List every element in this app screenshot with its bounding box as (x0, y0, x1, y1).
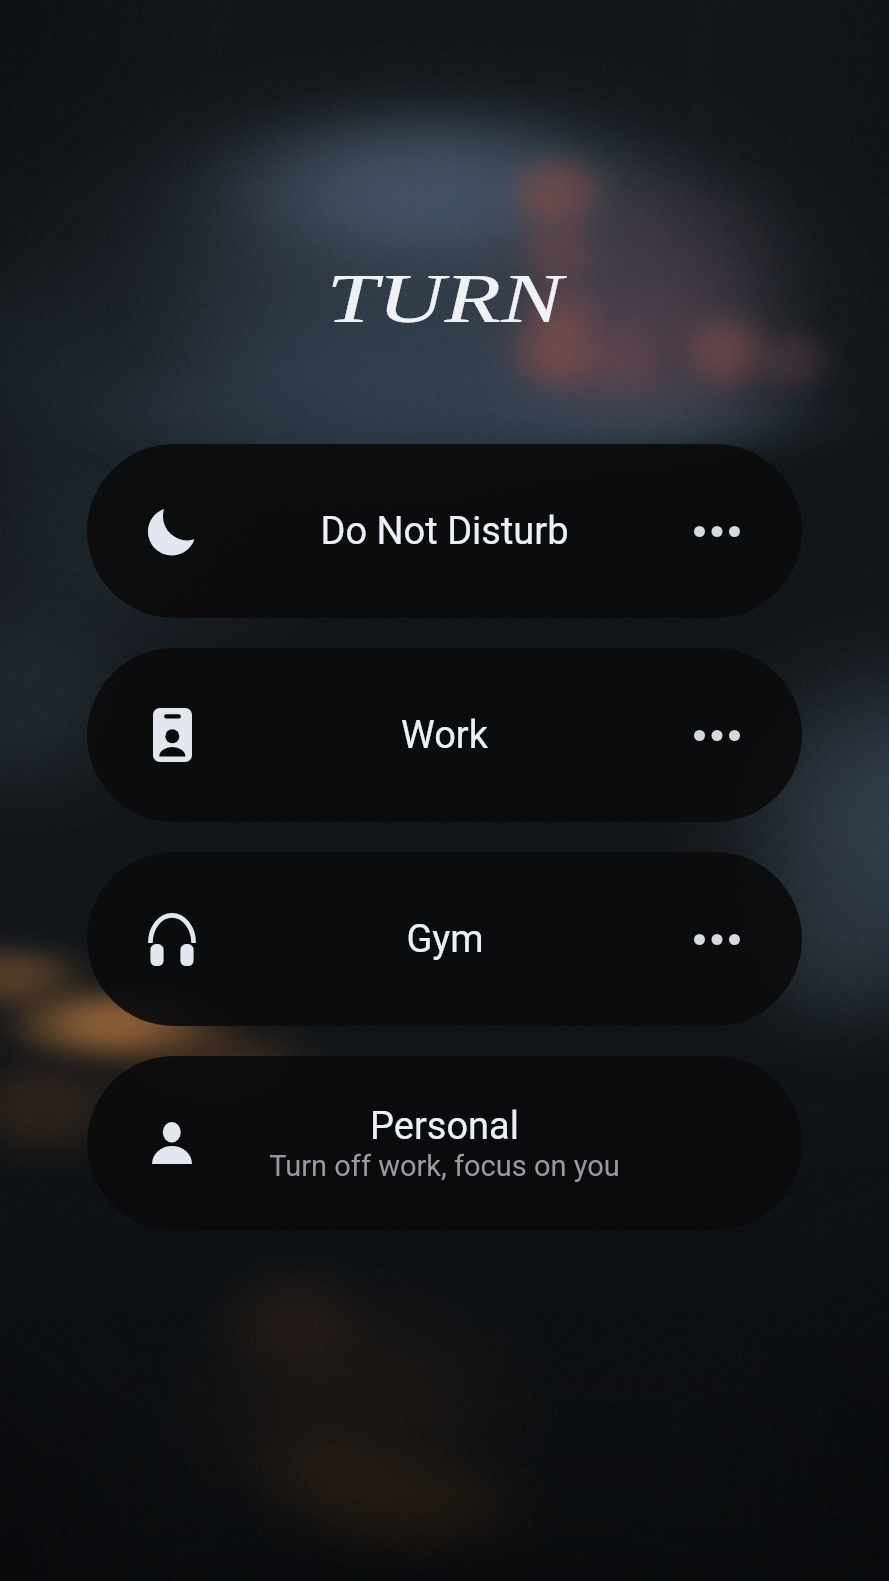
button[interactable]: Do Not Disturb (87, 444, 802, 618)
staticText: Personal (370, 1104, 519, 1149)
staticText: Work (401, 713, 488, 758)
button[interactable]: More options (678, 492, 756, 570)
button[interactable]: More options (678, 900, 756, 978)
staticText: TURN (326, 260, 563, 338)
staticText: Do Not Disturb (320, 509, 569, 554)
button[interactable]: Gym (87, 852, 802, 1026)
staticText: Turn off work, focus on you (269, 1149, 620, 1183)
button[interactable]: Work (87, 648, 802, 822)
button[interactable]: More options (678, 696, 756, 774)
staticText: Gym (406, 917, 484, 962)
button[interactable]: Personal (87, 1056, 802, 1230)
